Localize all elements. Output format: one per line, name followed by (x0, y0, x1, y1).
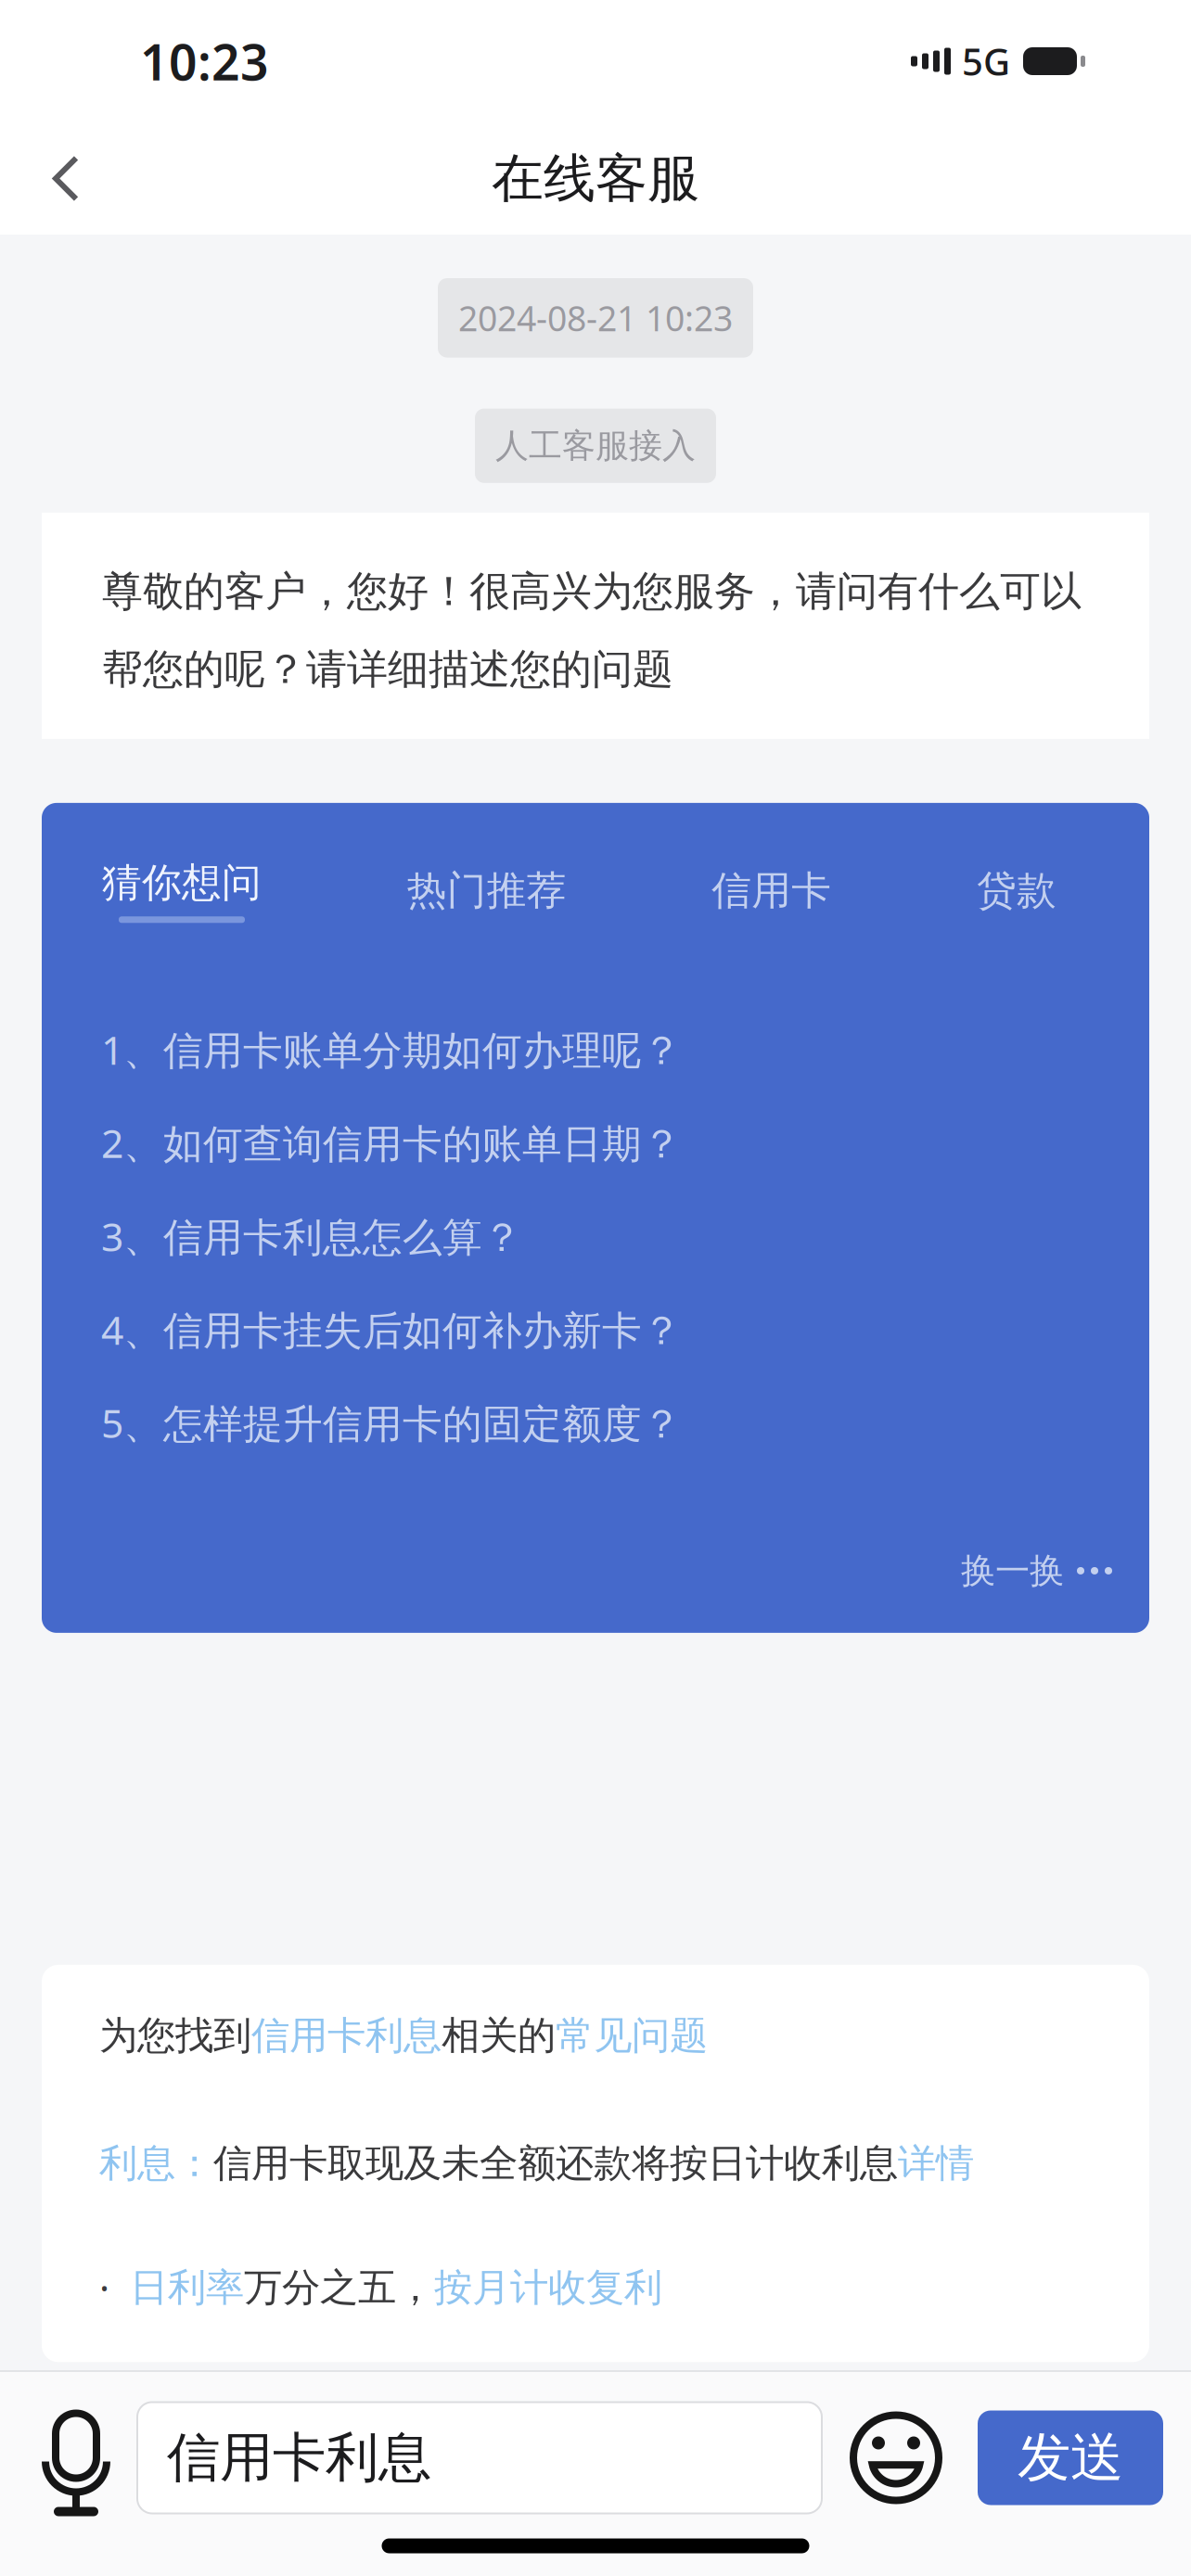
button[interactable]: Voice input (0, 2381, 137, 2534)
staticText: 在线客服 (492, 147, 699, 210)
staticText: 2024-08-21 10:23 (458, 295, 733, 341)
staticText: 帮您的呢？请详细描述您的问题 (102, 644, 673, 694)
staticText: 利息： (99, 2140, 213, 2187)
staticText: 猜你想问 (102, 859, 262, 907)
staticText: 3、信用卡利息怎么算？ (101, 1210, 522, 1262)
staticText: 5G (962, 37, 1010, 86)
staticText: 人工客服接入 (495, 425, 696, 466)
staticText: 2、如何查询信用卡的账单日期？ (101, 1116, 682, 1169)
staticText: 详情 (898, 2140, 974, 2187)
staticText: 换一换 (961, 1549, 1064, 1592)
staticText: 信用卡利息 (251, 2012, 442, 2059)
staticText: 5、怎样提升信用卡的固定额度？ (101, 1396, 682, 1449)
staticText: 日利率 (130, 2264, 244, 2311)
staticText: 按月计收复利 (434, 2264, 662, 2311)
button[interactable]: Back (0, 128, 108, 230)
staticText: 为您找到 (99, 2012, 251, 2059)
staticText: 常见问题 (556, 2012, 708, 2059)
staticText: 热门推荐 (407, 866, 566, 915)
staticText: 4、信用卡挂失后如何补办新卡？ (101, 1303, 682, 1356)
staticText: 贷款 (977, 866, 1057, 915)
button[interactable]: Emoji (822, 2381, 978, 2534)
staticText: 信用卡利息 (167, 2425, 431, 2490)
staticText: 相关的 (442, 2012, 556, 2059)
staticText: 尊敬的客户，您好！很高兴为您服务，请问有什么可以 (102, 566, 1082, 616)
staticText: 1、信用卡账单分期如何办理呢？ (101, 1023, 682, 1076)
staticText: 信用卡 (712, 866, 831, 915)
staticText: 信用卡取现及未全额还款将按日计收利息 (213, 2140, 898, 2187)
button[interactable]: 发送 (978, 2410, 1163, 2505)
staticText: · (99, 2262, 130, 2313)
staticText: 发送 (1018, 2425, 1123, 2490)
staticText: 万分之五， (244, 2264, 434, 2311)
staticText: 10:23 (140, 28, 269, 94)
